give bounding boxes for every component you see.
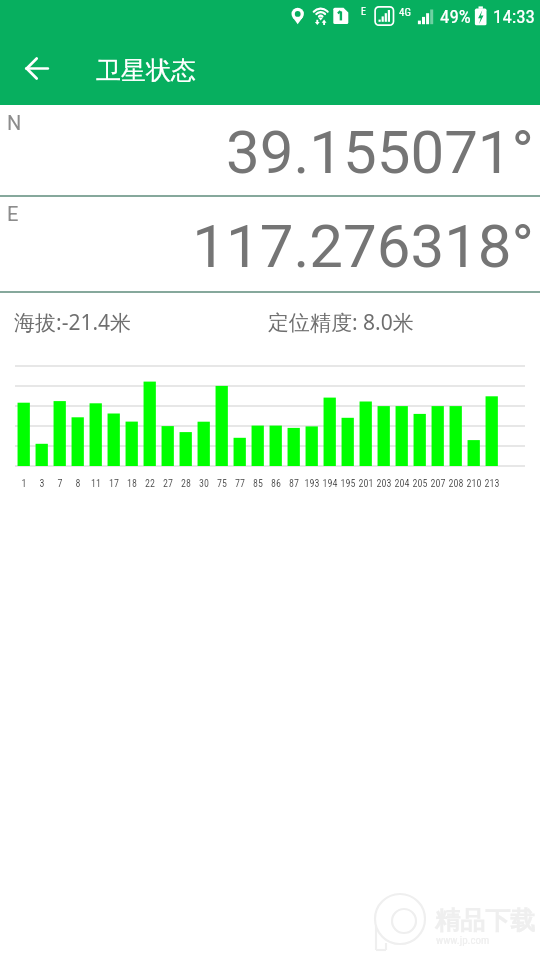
staticText: www.jp.com [436, 934, 490, 947]
staticText: 7 [49, 478, 71, 490]
staticText: 85 [247, 478, 269, 490]
staticText: 193 [301, 478, 323, 490]
staticText: 卫星状态 [96, 55, 196, 86]
staticText: 210 [463, 478, 485, 490]
staticText: 4G [399, 6, 411, 19]
staticText: 208 [445, 478, 467, 490]
staticText: 27 [157, 478, 179, 490]
staticText: 11 [85, 478, 107, 490]
staticText: 18 [121, 478, 143, 490]
button[interactable]: N [0, 105, 540, 197]
staticText: 86 [265, 478, 287, 490]
staticText: 3 [31, 478, 53, 490]
staticText: 194 [319, 478, 341, 490]
staticText: 30 [193, 478, 215, 490]
staticText: 8 [67, 478, 89, 490]
staticText: 22 [139, 478, 161, 490]
staticText: 195 [337, 478, 359, 490]
staticText: 213 [481, 478, 503, 490]
staticText: E [7, 202, 19, 225]
staticText: 定位精度: 8.0米 [268, 308, 414, 337]
staticText: 精品下载 [435, 905, 535, 936]
staticText: 75 [211, 478, 233, 490]
button[interactable]: E [0, 196, 540, 292]
staticText: 205 [409, 478, 431, 490]
staticText: 201 [355, 478, 377, 490]
staticText: 39.155071° [0, 117, 534, 187]
staticText: E [361, 6, 366, 18]
staticText: 77 [229, 478, 251, 490]
staticText: 海拔:-21.4米 [14, 308, 132, 337]
staticText: 14:33 [493, 5, 535, 27]
staticText: 49% [440, 5, 471, 27]
staticText: 87 [283, 478, 305, 490]
staticText: 28 [175, 478, 197, 490]
staticText: 204 [391, 478, 413, 490]
button[interactable]: Back [13, 47, 55, 89]
staticText: 117.276318° [0, 211, 534, 281]
staticText: N [7, 111, 22, 134]
staticText: 1 [13, 478, 35, 490]
staticText: 17 [103, 478, 125, 490]
staticText: 207 [427, 478, 449, 490]
staticText: 203 [373, 478, 395, 490]
